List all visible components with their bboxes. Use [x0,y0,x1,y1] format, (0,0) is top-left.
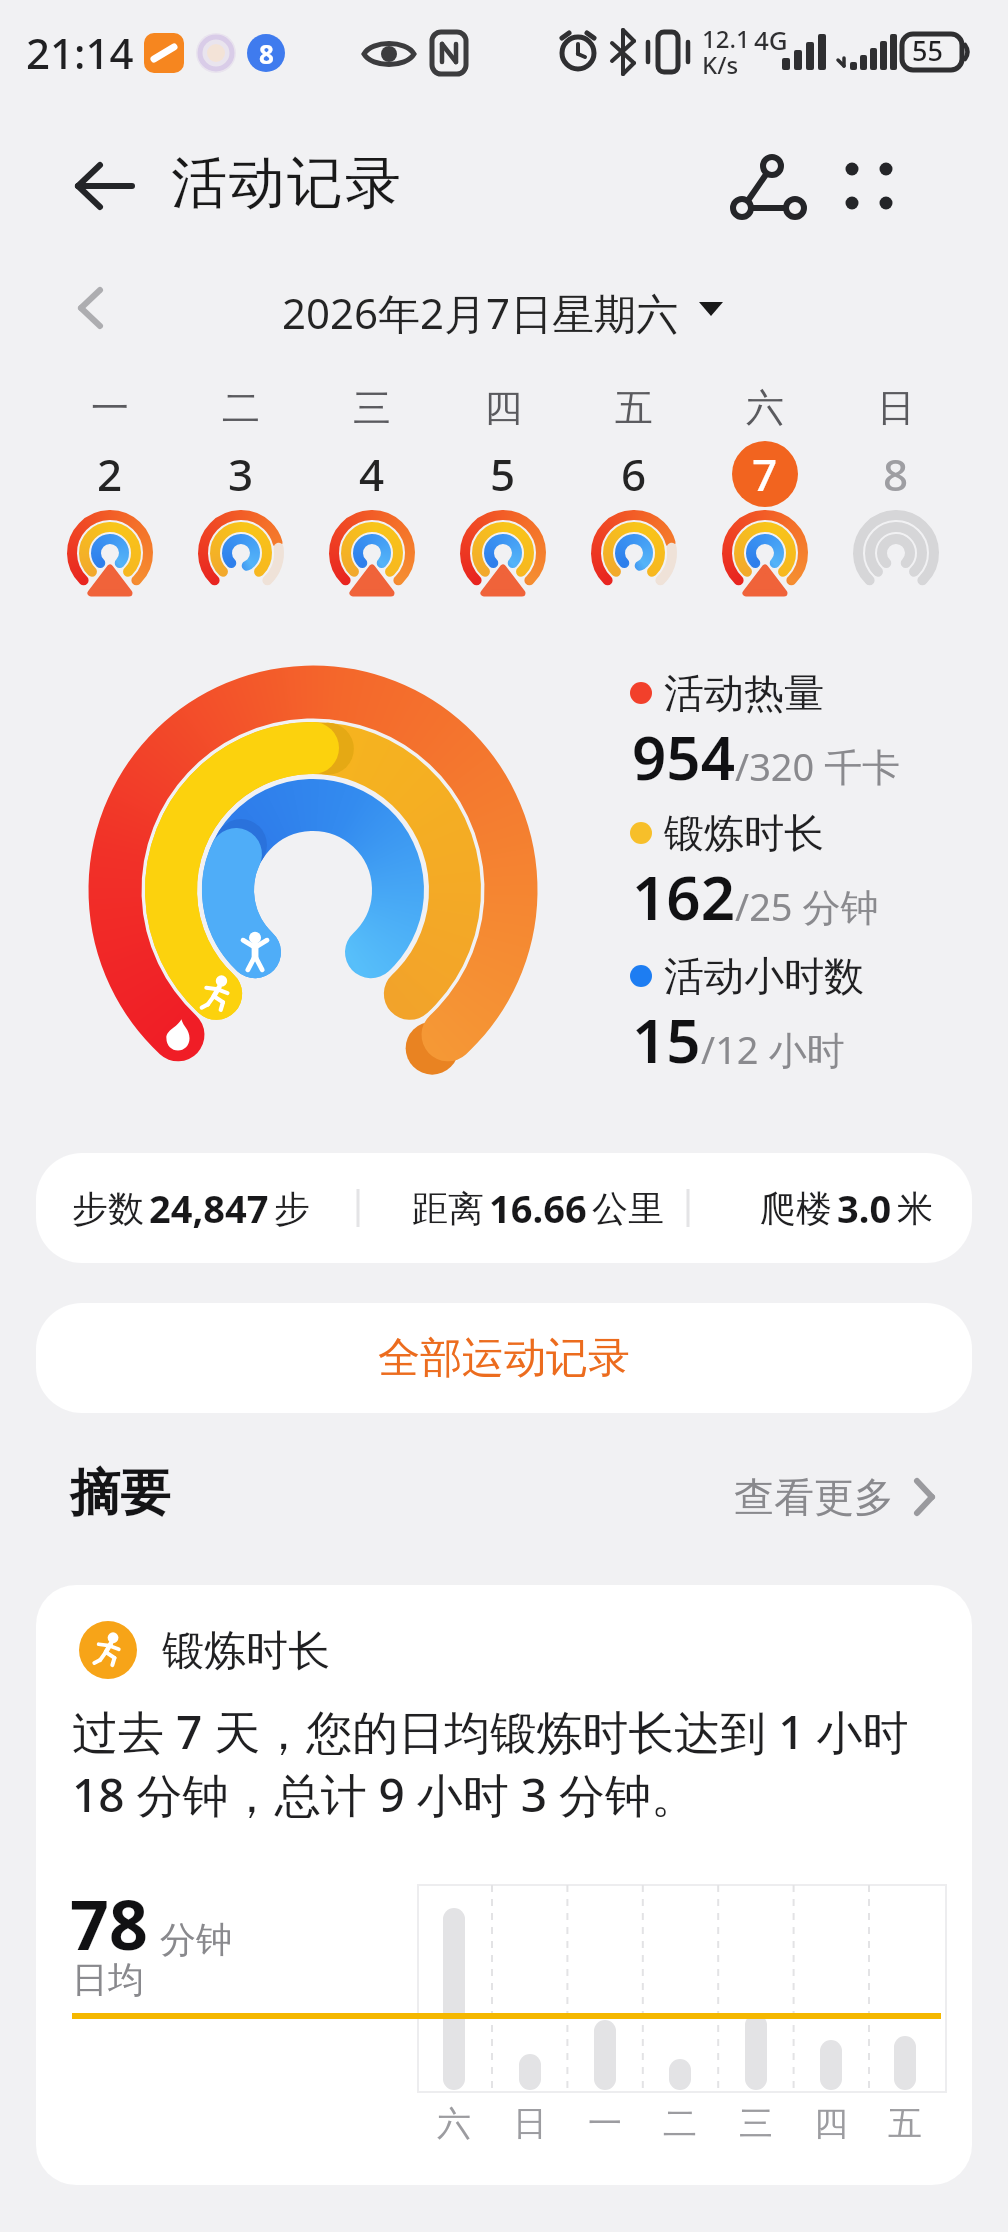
staticText: 六 [437,2102,471,2145]
button[interactable] [60,150,140,226]
staticText: 3.0 [837,1182,892,1234]
staticText: /320 千卡 [735,740,901,792]
staticText: /25 分钟 [735,880,879,932]
button[interactable] [56,276,126,342]
staticText: 55 [912,32,943,69]
button[interactable]: 8 [831,441,961,507]
staticText: 二 [663,2102,697,2145]
staticText: /12 小时 [701,1023,845,1075]
button[interactable]: 5 [438,441,568,507]
button[interactable] [720,145,816,231]
staticText: 一 [91,384,129,430]
staticText: 24,847 [149,1182,269,1234]
staticText: 分钟 [160,1917,232,1962]
staticText: 7 [752,444,778,504]
staticText: 日均 [72,1957,144,2002]
staticText: 查看更多 [734,1472,894,1522]
staticText: 三 [739,2102,773,2145]
staticText: 6 [621,444,647,504]
staticText: 12.1 [702,22,750,55]
staticText: 日 [877,384,915,430]
staticText: 4G [754,22,788,57]
staticText: 活动热量 [664,668,824,718]
button[interactable]: 2026年2月7日星期六 [200,282,760,342]
staticText: 4 [359,444,385,504]
button[interactable] [700,1462,960,1532]
staticText: 3 [228,444,254,504]
button[interactable]: 锻炼时长 [36,1585,972,2185]
staticText: 距离 [412,1186,484,1231]
staticText: 锻炼时长 [162,1625,330,1678]
button[interactable]: 步数 [36,1153,972,1263]
button[interactable]: 7 [732,441,798,507]
staticText: 2 [97,444,123,504]
button[interactable] [830,145,926,231]
staticText: 21:14 [26,24,134,81]
staticText: 二 [222,384,260,430]
staticText: 过去 7 天，您的日均锻炼时长达到 1 小时 [72,1700,909,1763]
button[interactable]: 全部运动记录 [36,1303,972,1413]
button[interactable]: 6 [569,441,699,507]
staticText: 公里 [592,1186,664,1231]
button[interactable]: 4 [307,441,437,507]
staticText: 活动小时数 [664,951,864,1001]
staticText: 15 [632,999,701,1081]
button[interactable]: 3 [176,441,306,507]
staticText: 四 [484,384,522,430]
staticText: 五 [888,2102,922,2145]
button[interactable]: 2 [45,441,175,507]
staticText: 六 [746,384,784,430]
staticText: 8 [259,36,274,71]
staticText: 5 [490,444,516,504]
staticText: 8 [883,444,909,504]
staticText: 954 [632,716,735,798]
staticText: 78 [70,1877,148,1970]
staticText: 日 [513,2102,547,2145]
staticText: 锻炼时长 [664,808,824,858]
staticText: 18 分钟，总计 9 小时 3 分钟。 [72,1763,698,1826]
staticText: 五 [615,384,653,430]
staticText: 米 [897,1186,933,1231]
staticText: 四 [814,2102,848,2145]
staticText: 16.66 [489,1182,587,1234]
staticText: 三 [353,384,391,430]
staticText: 2026年2月7日星期六 [282,284,679,341]
staticText: 活动记录 [170,148,402,219]
staticText: 162 [632,856,735,938]
staticText: 步 [274,1186,310,1231]
staticText: 爬楼 [760,1186,832,1231]
staticText: 摘要 [70,1462,170,1525]
staticText: K/s [702,48,739,81]
staticText: 步数 [72,1186,144,1231]
staticText: 全部运动记录 [378,1332,630,1385]
staticText: 一 [588,2102,622,2145]
